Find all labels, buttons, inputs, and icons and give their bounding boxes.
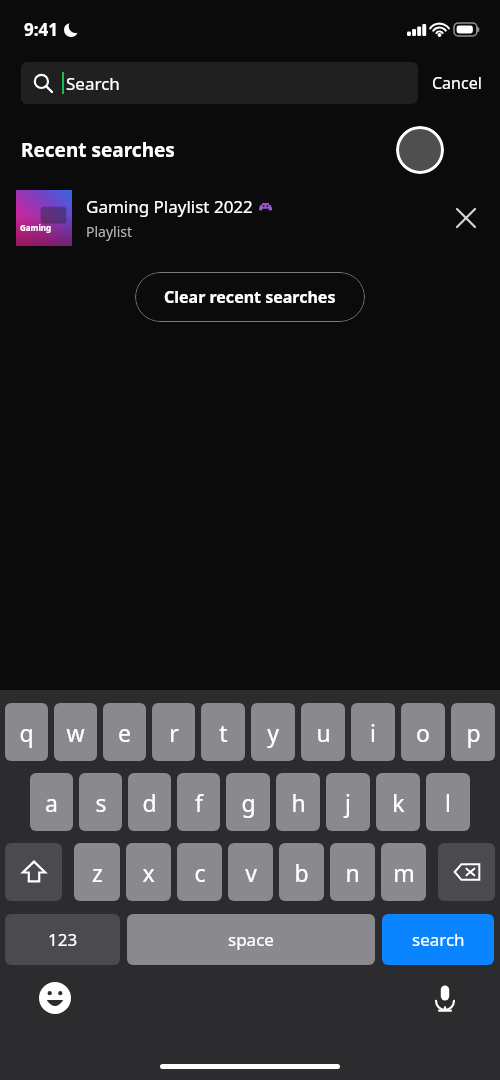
button[interactable]: y [251, 703, 295, 761]
button[interactable]: i [351, 703, 395, 761]
button[interactable]: t [201, 703, 245, 761]
button[interactable]: s [79, 773, 122, 831]
button[interactable]: Dictation [426, 979, 464, 1017]
button[interactable]: space [127, 914, 375, 965]
staticText: u [316, 717, 331, 748]
button[interactable]: Emoji [36, 979, 74, 1017]
staticText: j [345, 787, 351, 818]
staticText: Gaming Playlist 2022 [86, 195, 253, 218]
staticText: r [169, 717, 179, 748]
staticText: 9:41 [24, 18, 58, 41]
button[interactable]: j [326, 773, 370, 831]
button[interactable]: h [276, 773, 320, 831]
staticText: b [294, 857, 309, 888]
staticText: Clear recent searches [164, 286, 336, 308]
staticText: n [345, 857, 360, 888]
button[interactable]: u [301, 703, 345, 761]
button[interactable]: p [451, 703, 495, 761]
button[interactable]: o [401, 703, 445, 761]
button[interactable]: search [382, 914, 494, 965]
staticText: Search [66, 72, 120, 95]
button[interactable]: Cancel [418, 64, 496, 102]
button[interactable]: e [103, 703, 146, 761]
button[interactable]: c [177, 843, 222, 901]
button[interactable]: f [177, 773, 220, 831]
staticText: k [392, 787, 405, 818]
staticText: i [370, 717, 376, 748]
staticText: Cancel [432, 72, 482, 94]
button[interactable]: Remove [440, 192, 492, 244]
staticText: Recent searches [21, 137, 175, 163]
staticText: space [228, 928, 274, 951]
staticText: f [195, 787, 203, 818]
staticText: c [194, 857, 206, 888]
button[interactable]: l [426, 773, 470, 831]
staticText: search [412, 928, 465, 951]
staticText: g [241, 787, 256, 818]
button[interactable]: Shift [5, 843, 62, 901]
staticText: 123 [48, 928, 78, 951]
button[interactable]: r [152, 703, 195, 761]
staticText: t [219, 717, 228, 748]
staticText: q [19, 717, 34, 748]
button[interactable]: Backspace [438, 843, 495, 901]
button[interactable]: m [381, 843, 426, 901]
button[interactable]: x [126, 843, 171, 901]
button[interactable]: n [330, 843, 375, 901]
button[interactable]: d [128, 773, 171, 831]
staticText: d [142, 787, 157, 818]
staticText: m [393, 857, 415, 888]
staticText: Gaming [20, 222, 52, 233]
button[interactable]: q [5, 703, 48, 761]
staticText: w [66, 717, 85, 748]
staticText: s [95, 787, 107, 818]
staticText: l [445, 787, 451, 818]
button[interactable]: Gaming [0, 186, 500, 250]
button[interactable]: v [228, 843, 273, 901]
staticText: z [92, 857, 103, 888]
button[interactable]: b [279, 843, 324, 901]
button[interactable]: z [74, 843, 120, 901]
button[interactable]: Search [21, 62, 418, 104]
button[interactable]: a [30, 773, 73, 831]
button[interactable]: Clear recent searches [135, 272, 365, 322]
button[interactable]: w [54, 703, 97, 761]
button[interactable]: 123 [5, 914, 120, 965]
button[interactable]: k [376, 773, 420, 831]
button[interactable]: g [226, 773, 270, 831]
staticText: o [416, 717, 430, 748]
button[interactable]: Profile [396, 126, 444, 174]
staticText: y [267, 717, 279, 748]
staticText: a [45, 787, 58, 818]
staticText: x [142, 857, 155, 888]
staticText: p [466, 717, 481, 748]
staticText: Playlist [86, 222, 133, 241]
staticText: v [245, 857, 257, 888]
staticText: h [291, 787, 306, 818]
staticText: e [118, 717, 131, 748]
